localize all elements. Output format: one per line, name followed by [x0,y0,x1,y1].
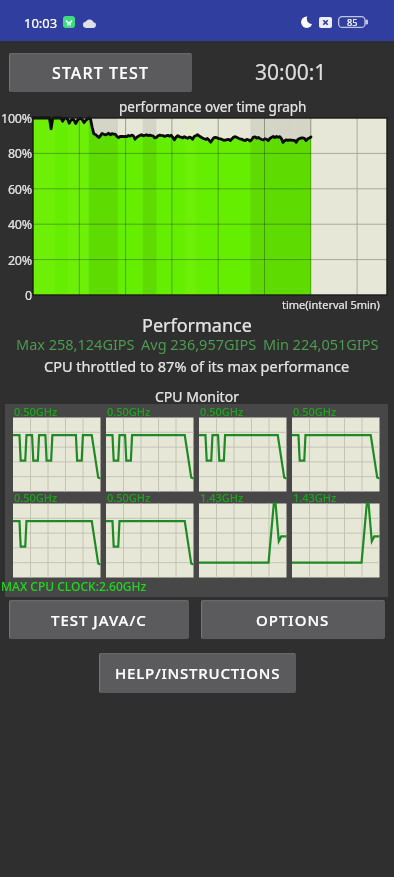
staticText: 40% [0,216,32,233]
staticText: 80% [0,145,32,162]
staticText: CPU Monitor [155,387,239,406]
staticText: 0.50GHz [107,404,151,419]
staticText: 60% [0,181,32,198]
button[interactable]: START TEST [9,53,192,92]
staticText: OPTIONS [256,610,330,630]
staticText: 10:03 [24,14,58,32]
staticText: 0 [0,287,32,304]
staticText: 1.43GHz [200,490,244,505]
staticText: 20% [0,252,32,269]
staticText: Performance [142,313,252,338]
staticText: 1.43GHz [293,490,337,505]
staticText: Avg 236,957GIPS [141,334,257,354]
button[interactable]: TEST JAVA/C [9,600,189,639]
staticText: 0.50GHz [107,490,151,505]
staticText: 30:00:1 [255,58,327,87]
button[interactable]: OPTIONS [201,600,385,639]
staticText: CPU throttled to 87% of its max performa… [44,356,350,376]
staticText: 85 [347,16,358,28]
staticText: HELP/INSTRUCTIONS [115,663,281,683]
staticText: 0.50GHz [14,404,58,419]
staticText: 0.50GHz [200,404,244,419]
staticText: performance over time graph [119,98,307,116]
staticText: MAX CPU CLOCK:2.60GHz [1,578,147,594]
staticText: Min 224,051GIPS [263,334,379,354]
staticText: Max 258,124GIPS [16,334,135,354]
staticText: 100% [0,110,32,127]
staticText: 0.50GHz [293,404,337,419]
staticText: START TEST [52,62,150,84]
staticText: time(interval 5min) [282,297,380,312]
staticText: 0.50GHz [14,490,58,505]
staticText: TEST JAVA/C [51,610,147,630]
button[interactable]: HELP/INSTRUCTIONS [99,653,296,693]
